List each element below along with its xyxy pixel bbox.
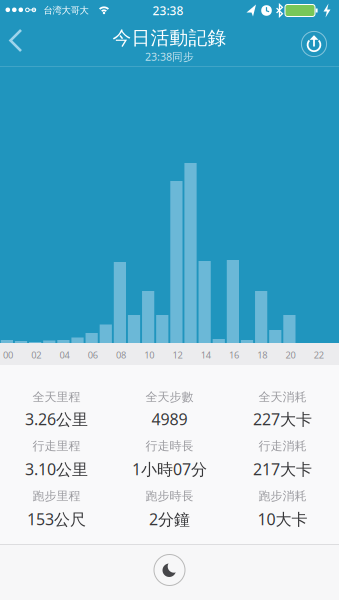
staticText: 2分鐘: [149, 508, 190, 530]
staticText: 23:38: [152, 2, 183, 18]
staticText: 10大卡: [257, 508, 307, 530]
staticText: 3.10公里: [25, 458, 88, 480]
staticText: 14: [201, 349, 211, 361]
staticText: 全天里程: [32, 390, 80, 404]
staticText: 行走時長: [145, 439, 193, 453]
staticText: 10: [144, 349, 154, 361]
staticText: 18: [257, 349, 267, 361]
staticText: 3.26公里: [25, 408, 88, 430]
staticText: 行走里程: [32, 439, 80, 453]
staticText: 行走消耗: [258, 439, 306, 453]
staticText: 23:38同步: [145, 49, 194, 64]
staticText: 今日活動記錄: [112, 26, 226, 49]
staticText: 227大卡: [253, 408, 312, 430]
staticText: 217大卡: [253, 458, 312, 480]
staticText: 全天消耗: [258, 390, 306, 404]
staticText: 04: [59, 349, 69, 361]
staticText: 16: [229, 349, 239, 361]
button[interactable]: Back: [0, 20, 32, 61]
staticText: 22: [314, 349, 324, 361]
staticText: 153公尺: [27, 508, 86, 530]
staticText: 跑步消耗: [258, 489, 306, 503]
staticText: 台湾大哥大: [43, 5, 88, 16]
staticText: 08: [116, 349, 126, 361]
staticText: 1小時07分: [132, 458, 207, 480]
staticText: 跑步里程: [32, 489, 80, 503]
staticText: 12: [172, 349, 182, 361]
button[interactable]: Sync: [299, 29, 329, 59]
staticText: 4989: [151, 408, 187, 430]
staticText: 20: [285, 349, 295, 361]
staticText: 00: [3, 349, 13, 361]
button[interactable]: Sleep mode: [153, 554, 185, 586]
staticText: 全天步數: [145, 390, 193, 404]
staticText: 跑步時長: [145, 489, 193, 503]
staticText: 06: [88, 349, 98, 361]
staticText: 02: [31, 349, 41, 361]
